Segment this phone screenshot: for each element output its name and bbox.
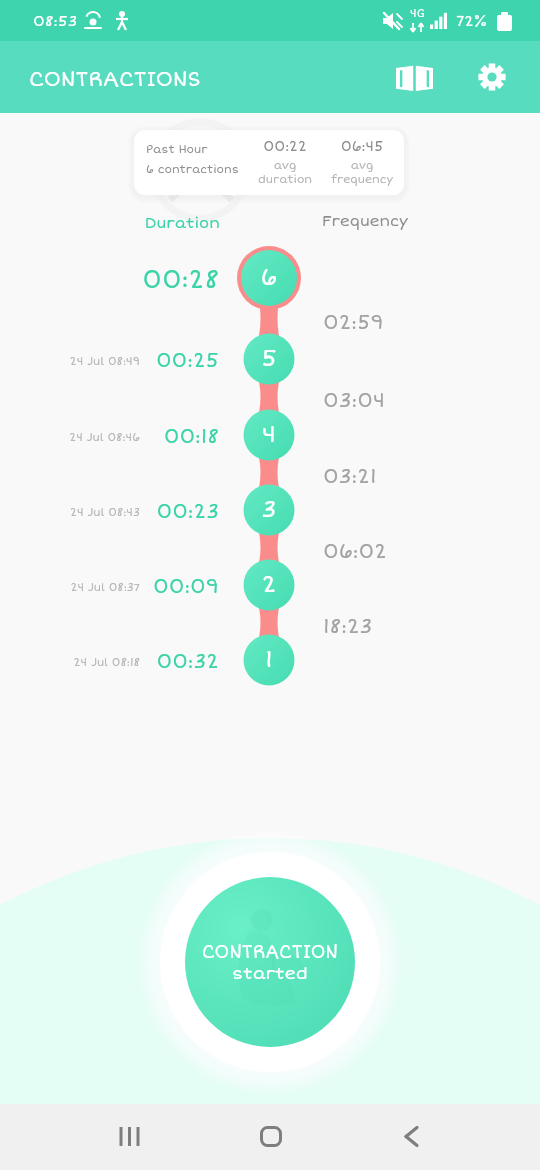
staticText: Past Hour xyxy=(146,143,208,157)
staticText: 5 xyxy=(249,344,289,374)
staticText: started xyxy=(232,963,308,984)
staticText: 03:21 xyxy=(323,464,377,489)
staticText: 00:18 xyxy=(61,424,219,449)
button[interactable]: History xyxy=(390,53,438,101)
staticText: 00:25 xyxy=(61,348,219,373)
staticText: 6 contractions xyxy=(146,163,239,177)
staticText: Frequency xyxy=(322,212,408,230)
button[interactable]: Recent apps xyxy=(100,1107,160,1167)
staticText: frequency xyxy=(326,173,398,187)
staticText: 24 Jul 08:37 xyxy=(10,581,140,595)
staticText: avg xyxy=(249,159,321,173)
staticText: Duration xyxy=(145,214,220,232)
staticText: 6 xyxy=(249,263,289,293)
staticText: 24 Jul 08:18 xyxy=(10,656,140,670)
staticText: CONTRACTION xyxy=(202,941,338,963)
staticText: 06:02 xyxy=(323,539,387,564)
staticText: 4 xyxy=(249,420,289,450)
staticText: 00:09 xyxy=(61,574,219,599)
staticText: CONTRACTIONS xyxy=(29,66,201,92)
staticText: 00:28 xyxy=(61,265,219,296)
staticText: 4G xyxy=(410,7,425,21)
staticText: 08:53 xyxy=(33,12,78,30)
staticText: 00:22 xyxy=(249,138,321,155)
staticText: avg xyxy=(326,159,398,173)
staticText: 72% xyxy=(456,12,488,30)
staticText: 1 xyxy=(249,645,289,675)
button[interactable]: Past Hour xyxy=(134,130,404,195)
staticText: 00:32 xyxy=(61,649,219,674)
staticText: 24 Jul 08:49 xyxy=(10,355,140,369)
staticText: 02:59 xyxy=(323,310,384,335)
staticText: 18:23 xyxy=(323,614,373,639)
button[interactable]: Settings xyxy=(468,53,516,101)
staticText: 00:23 xyxy=(61,499,219,524)
staticText: 2 xyxy=(249,570,289,600)
button[interactable]: Back xyxy=(382,1107,442,1167)
staticText: duration xyxy=(249,173,321,187)
staticText: 24 Jul 08:46 xyxy=(10,431,140,445)
button[interactable]: Home xyxy=(241,1107,301,1167)
staticText: 3 xyxy=(249,495,289,525)
button[interactable]: CONTRACTION xyxy=(185,877,355,1047)
staticText: 03:04 xyxy=(323,388,385,413)
staticText: 06:45 xyxy=(326,138,398,155)
staticText: 24 Jul 08:43 xyxy=(10,506,140,520)
